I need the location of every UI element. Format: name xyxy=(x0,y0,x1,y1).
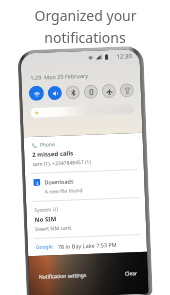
staticText: 12:30 xyxy=(116,52,133,61)
staticText: 2 missed calls xyxy=(32,149,73,159)
staticText: Notification settings xyxy=(39,272,87,281)
button[interactable]: Airplane mode xyxy=(102,84,116,98)
staticText: Google xyxy=(36,243,53,251)
staticText: A new file found xyxy=(45,187,83,196)
staticText: Downloads xyxy=(44,177,74,185)
button[interactable]: Clear xyxy=(122,267,141,281)
button[interactable]: Sound xyxy=(48,86,62,100)
button[interactable]: Phone xyxy=(24,133,144,173)
button[interactable]: Google xyxy=(27,235,147,256)
button[interactable]: Brightness xyxy=(30,104,134,118)
staticText: System UI xyxy=(34,206,59,214)
staticText: Insert SIM card. xyxy=(35,224,73,233)
button[interactable]: Wi-Fi xyxy=(29,85,44,101)
staticText: No SIM xyxy=(35,215,57,224)
button[interactable]: Bluetooth xyxy=(66,85,80,100)
button[interactable]: Flashlight xyxy=(120,83,134,98)
staticText: Organized your xyxy=(34,6,137,25)
staticText: Clear xyxy=(125,270,138,277)
button[interactable]: Auto rotate xyxy=(84,84,98,99)
button[interactable]: Notification settings xyxy=(36,269,90,284)
button[interactable]: System UI xyxy=(26,198,146,238)
staticText: notifications xyxy=(44,28,126,47)
staticText: 1:29 Mon 25 February xyxy=(30,72,88,81)
staticText: sam (1), +2347848457 (1) xyxy=(32,159,92,168)
staticText: 78 in Bay Lake 7:53 PM xyxy=(58,241,117,250)
staticText: Phone xyxy=(40,141,56,149)
button[interactable]: Downloads xyxy=(25,170,145,201)
